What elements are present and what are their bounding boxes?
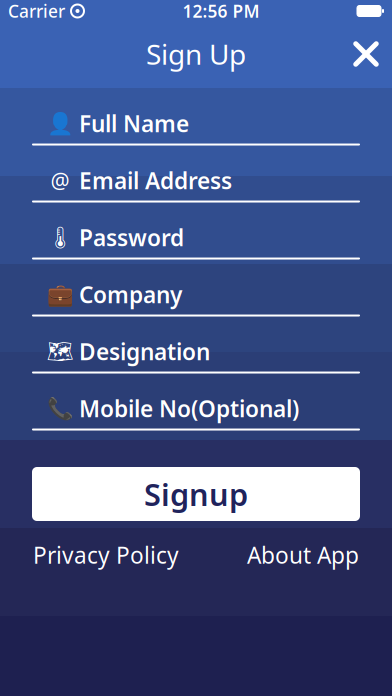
button[interactable]: 👤: [32, 96, 360, 153]
staticText: @: [50, 166, 69, 195]
staticText: 🌡: [46, 225, 73, 250]
staticText: [65, 0, 70, 22]
button[interactable]: About App: [247, 540, 359, 570]
staticText: Mobile No(Optional): [79, 393, 299, 423]
staticText: Password: [79, 222, 184, 252]
button[interactable]: Privacy Policy: [33, 540, 179, 570]
staticText: About App: [247, 540, 359, 570]
staticText: Email Address: [79, 165, 232, 195]
staticText: Full Name: [79, 108, 189, 138]
button[interactable]: Close: [340, 28, 392, 80]
staticText: Carrier: [8, 0, 65, 22]
staticText: Sign Up: [146, 35, 246, 73]
staticText: Signup: [144, 474, 248, 514]
staticText: Privacy Policy: [33, 540, 179, 570]
staticText: 📞: [46, 396, 73, 421]
button[interactable]: 🗺: [32, 324, 360, 381]
staticText: Designation: [79, 336, 210, 366]
button[interactable]: @: [32, 153, 360, 210]
staticText: Company: [79, 279, 182, 309]
staticText: 12:56 PM: [182, 0, 259, 22]
button[interactable]: 💼: [32, 267, 360, 324]
staticText: 🗺: [46, 339, 73, 364]
staticText: 👤: [46, 111, 73, 136]
staticText: 💼: [46, 282, 73, 307]
button[interactable]: Signup: [32, 467, 360, 521]
button[interactable]: 📞: [32, 381, 360, 438]
button[interactable]: 🌡: [32, 210, 360, 267]
